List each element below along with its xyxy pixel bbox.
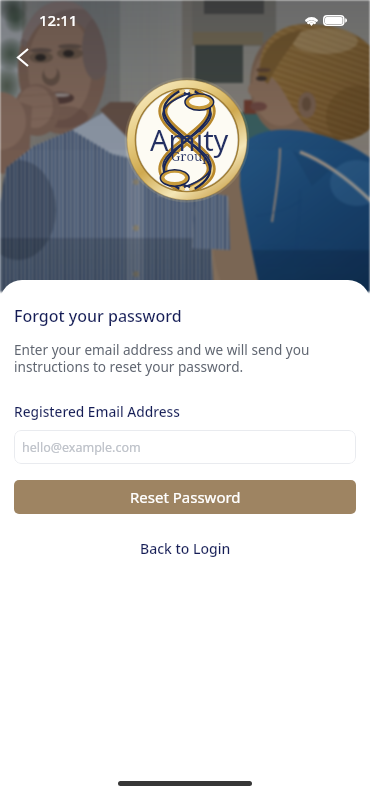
staticText: Forgot your password [14,305,182,327]
button[interactable]: Reset Password [14,480,356,514]
staticText: Back to Login [140,539,231,558]
staticText: Enter your email address and we will sen… [14,340,356,376]
staticText: Reset Password [130,487,241,507]
button[interactable]: hello@example.com [14,430,356,464]
staticText: Registered Email Address [14,402,180,421]
staticText: Group [171,147,211,165]
staticText: hello@example.com [22,439,141,456]
button[interactable]: Back [5,39,41,75]
staticText: Amity [150,120,229,159]
button[interactable]: Back to Login [132,536,239,561]
staticText: 12:11 [39,10,78,30]
